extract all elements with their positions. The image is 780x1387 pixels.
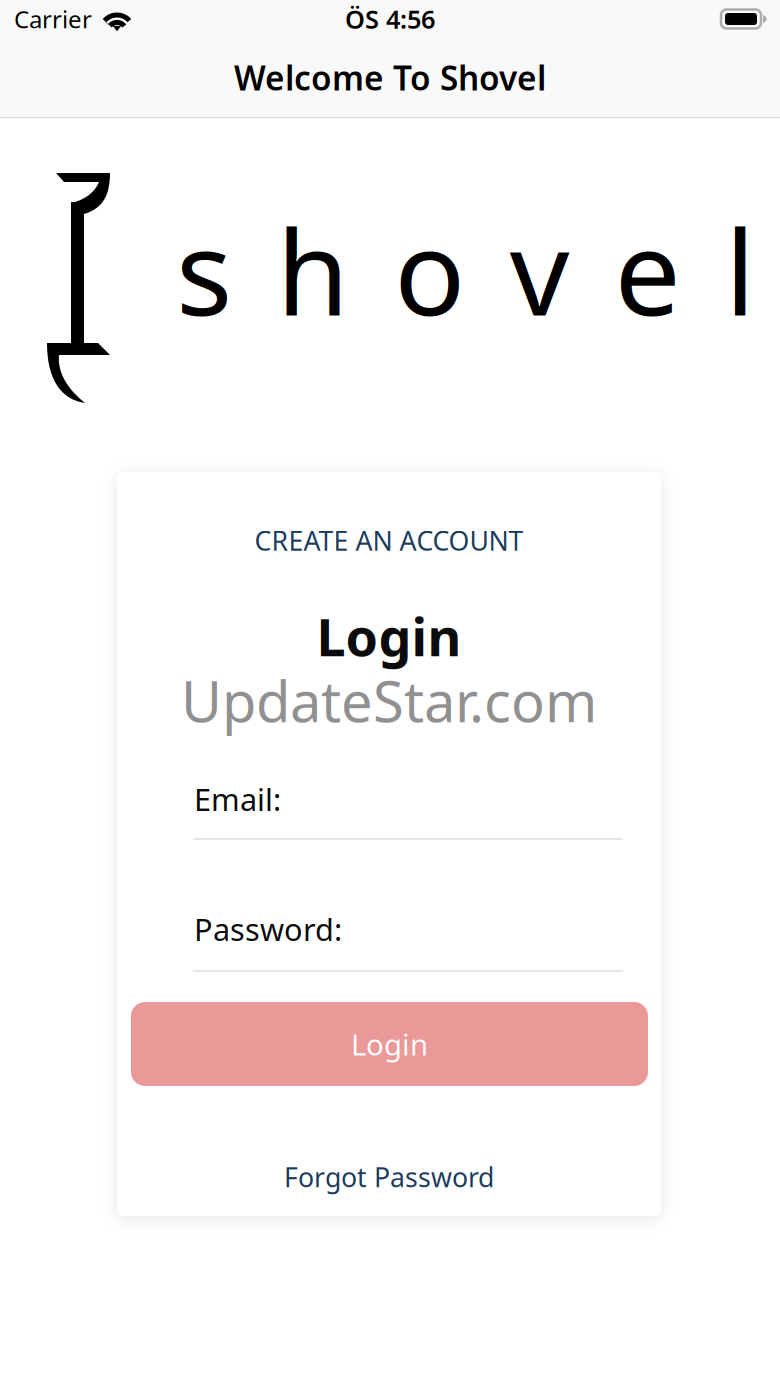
staticText: Login	[351, 1024, 428, 1063]
button[interactable]: CREATE AN ACCOUNT	[117, 523, 661, 558]
staticText: s h o v e l	[176, 192, 755, 348]
staticText: UpdateStar.com	[181, 663, 597, 738]
staticText: Welcome To Shovel	[234, 55, 546, 100]
staticText: Forgot Password	[284, 1159, 494, 1195]
staticText: Password:	[194, 909, 342, 949]
staticText: Email:	[194, 779, 281, 819]
staticText: CREATE AN ACCOUNT	[254, 523, 523, 558]
button[interactable]: Forgot Password	[117, 1160, 661, 1194]
staticText: Carrier	[14, 3, 92, 35]
staticText: ÖS 4:56	[345, 2, 435, 36]
staticText: Login	[316, 601, 461, 671]
button[interactable]: Login	[131, 1002, 648, 1086]
